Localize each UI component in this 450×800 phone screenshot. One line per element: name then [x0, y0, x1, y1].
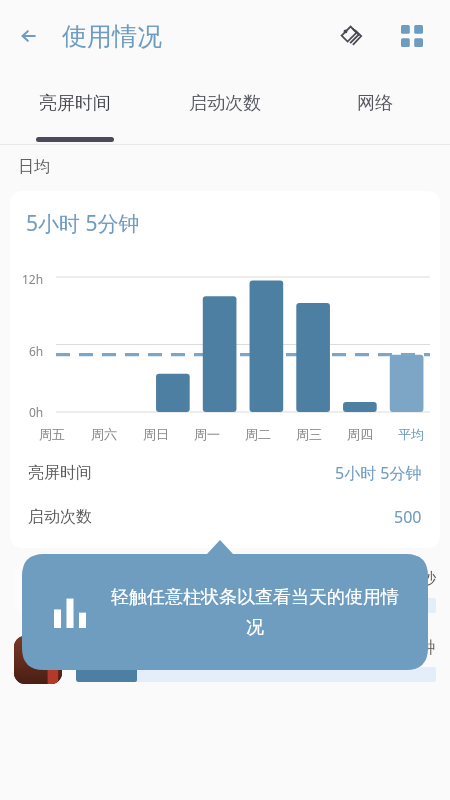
staticText: 12h [22, 271, 44, 287]
button[interactable]: 启动次数 [10, 506, 440, 528]
button[interactable]: 王者荣耀 [0, 636, 450, 684]
staticText: 日均 [18, 157, 50, 177]
staticText: 0h [29, 404, 44, 420]
button[interactable]: 亮屏时间 [0, 72, 150, 144]
staticText: 轻触任意柱状条以查看当天的使用情况 [108, 586, 402, 639]
staticText: 周五 [39, 426, 65, 442]
staticText: 5小时 5分钟 [26, 209, 140, 238]
staticText: 周六 [91, 426, 117, 442]
staticText: 周四 [347, 426, 373, 442]
button[interactable]: 5小时 5分钟 [10, 191, 440, 548]
staticText: 启动次数 [189, 92, 261, 115]
button[interactable]: 网络 [300, 72, 450, 144]
staticText: 使用情况 [62, 21, 162, 52]
staticText: 周一 [194, 426, 220, 442]
staticText: 亮屏时间 [39, 92, 111, 115]
button[interactable]: Tags [330, 15, 372, 57]
staticText: 周二 [245, 426, 271, 442]
staticText: 500 [394, 506, 422, 528]
staticText: 5小时 5分钟 [335, 462, 422, 484]
staticText: 亮屏时间 [28, 463, 92, 483]
staticText: 平均 [398, 426, 424, 442]
staticText: 周日 [143, 426, 169, 442]
button[interactable]: Back [8, 14, 52, 58]
staticText: 网络 [357, 92, 393, 115]
staticText: 1小时 5分钟 42秒 [311, 567, 436, 589]
staticText: 启动次数 [28, 507, 92, 527]
staticText: 周三 [296, 426, 322, 442]
button[interactable]: 启动次数 [150, 72, 300, 144]
button[interactable]: Grid view [390, 14, 434, 58]
button[interactable]: 亮屏时间 [10, 462, 440, 484]
button[interactable]: MT管理器 [0, 566, 450, 614]
staticText: 6h [29, 343, 44, 359]
staticText: 55分钟 [385, 636, 436, 658]
